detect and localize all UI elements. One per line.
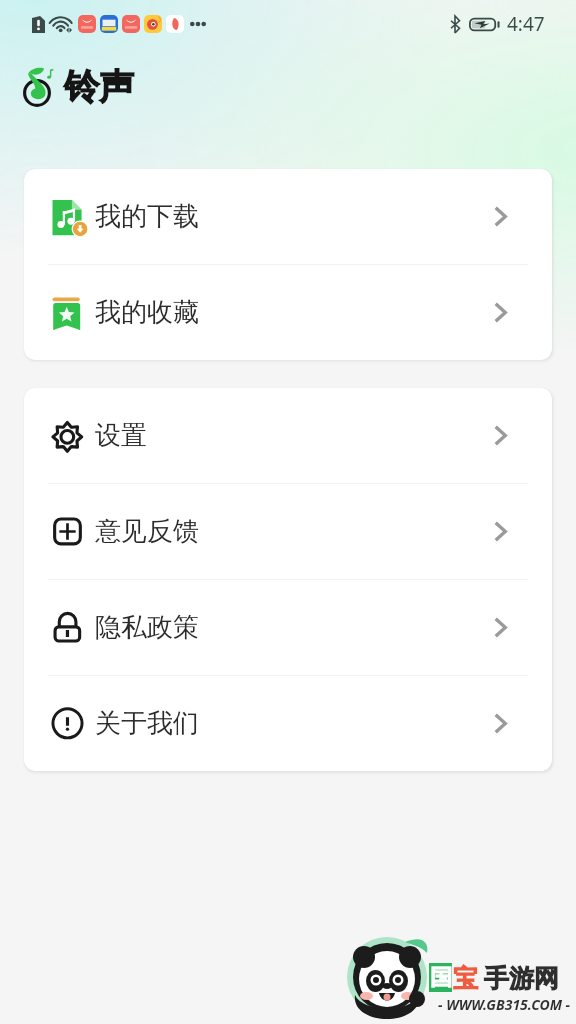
staticText: 我的下载: [95, 200, 199, 233]
staticText: 铃声: [64, 65, 134, 109]
staticText: 宝: [453, 963, 478, 994]
button[interactable]: 关于我们: [24, 676, 552, 771]
button[interactable]: 隐私政策: [24, 580, 552, 675]
staticText: - WWW.GB315.COM -: [438, 995, 571, 1014]
staticText: 手游网: [484, 963, 559, 994]
staticText: 意见反馈: [95, 515, 199, 548]
staticText: 隐私政策: [95, 611, 199, 644]
button[interactable]: 设置: [24, 388, 552, 483]
staticText: 我的收藏: [95, 296, 199, 329]
button[interactable]: 意见反馈: [24, 484, 552, 579]
staticText: 4:47: [507, 11, 545, 37]
button[interactable]: 我的下载: [24, 169, 552, 264]
staticText: 关于我们: [95, 707, 199, 740]
staticText: 国: [430, 964, 452, 992]
button[interactable]: 我的收藏: [24, 265, 552, 360]
staticText: 设置: [95, 419, 147, 452]
